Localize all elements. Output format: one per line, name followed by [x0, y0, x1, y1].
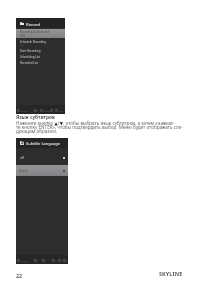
button[interactable]: Return	[34, 108, 37, 112]
staticText: 22	[16, 272, 22, 279]
staticText: Record	[26, 21, 41, 27]
staticText: USB	[20, 34, 26, 38]
staticText: Select	[21, 259, 28, 262]
staticText: Scheduling List	[20, 55, 40, 59]
staticText: Subtitle Language	[26, 141, 61, 146]
button[interactable]: Exit	[55, 108, 64, 112]
button[interactable]: Return	[34, 258, 37, 262]
button[interactable]: Next	[58, 258, 61, 262]
staticText: Greek	[19, 169, 28, 173]
button[interactable]: Schedule Recording	[16, 39, 65, 47]
staticText: Recording Quick Record	[20, 30, 50, 34]
button[interactable]: Recorded List	[16, 61, 65, 67]
staticText: off	[20, 156, 25, 160]
staticText: SKYLINE	[159, 270, 183, 277]
button[interactable]: Move	[42, 258, 45, 262]
staticText: Move	[44, 109, 51, 112]
button[interactable]: Prev	[52, 258, 55, 262]
button[interactable]: Exit	[63, 258, 66, 262]
button[interactable]: Select	[17, 258, 28, 262]
button[interactable]: Scheduling List	[16, 55, 65, 61]
staticText: Off	[20, 43, 24, 46]
button[interactable]: Move	[40, 108, 51, 112]
button[interactable]: Select	[17, 108, 28, 112]
staticText: Start Recording	[20, 49, 41, 53]
staticText: Нажмите кнопку ▲/▼, чтобы выбрать язык с…	[16, 120, 183, 135]
button[interactable]: Menu	[50, 108, 53, 112]
staticText: Recorded List	[20, 61, 38, 65]
staticText: Exit	[59, 109, 64, 112]
button[interactable]: off	[16, 153, 68, 163]
staticText: Язык субтитров	[16, 114, 55, 120]
staticText: Schedule Recording	[20, 40, 46, 44]
button[interactable]: Greek	[16, 165, 68, 176]
button[interactable]: Recording Quick Record	[16, 29, 65, 38]
button[interactable]: Start Recording	[16, 49, 65, 55]
staticText: Select	[21, 109, 28, 112]
